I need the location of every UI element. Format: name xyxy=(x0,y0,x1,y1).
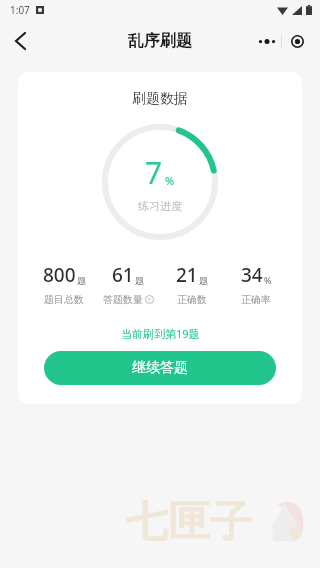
staticText: 题 xyxy=(199,275,208,286)
staticText: 乱序刷题 xyxy=(128,31,192,51)
staticText: 正确率 xyxy=(241,293,271,306)
staticText: 刷题数据 xyxy=(132,90,188,108)
staticText: 34 xyxy=(241,262,263,288)
button[interactable]: Menu xyxy=(252,29,312,53)
staticText: % xyxy=(165,173,175,188)
staticText: 题目总数 xyxy=(44,293,84,306)
staticText: 继续答题 xyxy=(132,359,188,377)
staticText: 七匣子 xyxy=(126,496,252,549)
button[interactable]: Help xyxy=(145,295,154,304)
button[interactable]: Back xyxy=(0,21,40,61)
staticText: 7 xyxy=(145,152,163,193)
staticText: 1:07 xyxy=(10,3,30,17)
staticText: 当前刷到第19题 xyxy=(121,326,200,341)
staticText: 答题数量 xyxy=(103,293,143,306)
staticText: 正确数 xyxy=(177,293,207,306)
button[interactable]: 继续答题 xyxy=(44,351,276,385)
staticText: 练习进度 xyxy=(138,199,182,213)
staticText: 题 xyxy=(77,275,86,286)
staticText: % xyxy=(264,274,272,286)
staticText: 61 xyxy=(112,262,134,288)
staticText: 21 xyxy=(176,262,198,288)
staticText: 800 xyxy=(43,262,76,288)
staticText: ? xyxy=(148,296,151,304)
staticText: 题 xyxy=(135,275,144,286)
